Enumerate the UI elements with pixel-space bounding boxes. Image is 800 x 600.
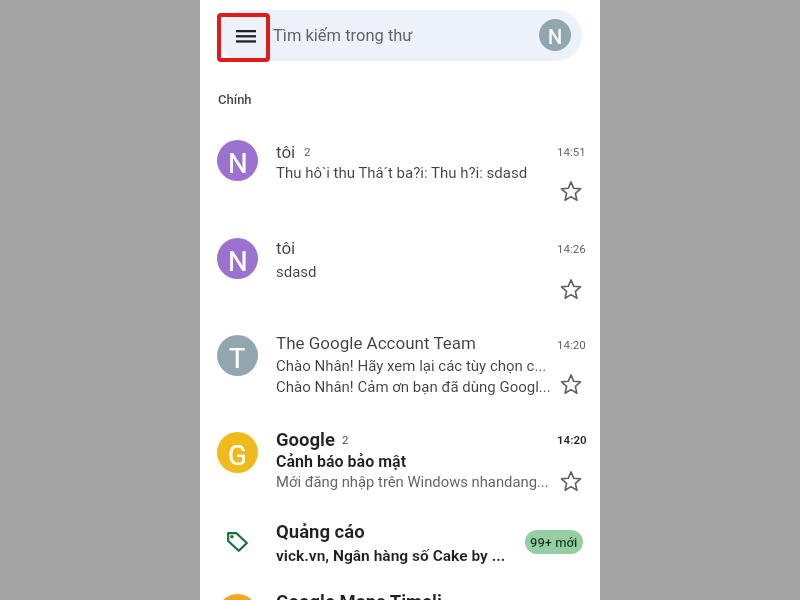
button[interactable] bbox=[200, 130, 600, 223]
button[interactable]: Star bbox=[557, 469, 585, 497]
staticText: N bbox=[228, 147, 248, 179]
staticText: 14:51 bbox=[557, 145, 586, 158]
button[interactable]: Open navigation menu bbox=[217, 10, 270, 61]
staticText: The Google Account Team bbox=[276, 333, 566, 353]
button[interactable] bbox=[200, 227, 600, 320]
staticText: 2 bbox=[304, 145, 311, 158]
staticText: 2 bbox=[342, 433, 349, 446]
button[interactable]: 99+ mới bbox=[525, 530, 583, 554]
staticText: N bbox=[228, 245, 248, 277]
staticText: Chính bbox=[218, 92, 252, 107]
staticText: Google bbox=[276, 429, 335, 451]
staticText: N bbox=[548, 25, 563, 48]
staticText: 99+ mới bbox=[530, 535, 578, 550]
staticText: Chào Nhân! Hãy xem lại các tùy chọn c... bbox=[276, 357, 566, 375]
staticText: Tìm kiếm trong thư bbox=[273, 26, 413, 45]
staticText: 14:20 bbox=[557, 433, 587, 446]
staticText: Mới đăng nhập trên Windows nhandang... bbox=[276, 473, 566, 490]
staticText: sdasd bbox=[276, 263, 566, 281]
button[interactable] bbox=[200, 515, 600, 582]
staticText: 14:20 bbox=[557, 338, 586, 351]
staticText: tôi bbox=[276, 238, 296, 258]
staticText: vick.vn, Ngân hàng số Cake by ... bbox=[276, 547, 566, 565]
staticText: T bbox=[229, 342, 246, 374]
button[interactable] bbox=[200, 421, 600, 514]
staticText: Chào Nhân! Cảm ơn bạn đã dùng Googl... bbox=[276, 378, 566, 396]
button[interactable] bbox=[218, 10, 582, 61]
button[interactable] bbox=[200, 582, 600, 600]
staticText: Google Maps Timeli... bbox=[276, 591, 566, 600]
staticText: 14:26 bbox=[557, 242, 586, 255]
staticText: Cảnh báo bảo mật bbox=[276, 452, 566, 471]
button[interactable] bbox=[200, 324, 600, 417]
staticText: Thu hôˋi thu Thâˊt ba?i: Thu h?i: sdasd bbox=[276, 164, 566, 182]
button[interactable]: Star bbox=[557, 372, 585, 400]
button[interactable]: Star bbox=[557, 179, 585, 207]
staticText: G bbox=[228, 439, 247, 471]
button[interactable]: Star bbox=[557, 277, 585, 305]
button[interactable]: Account bbox=[539, 19, 571, 51]
staticText: Quảng cáo bbox=[276, 521, 365, 543]
staticText: tôi bbox=[276, 142, 296, 162]
